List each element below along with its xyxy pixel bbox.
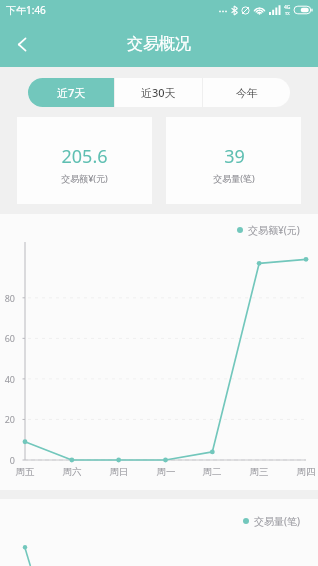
staticText: 交易额¥(元) (61, 172, 108, 184)
staticText: 近30天 (141, 85, 176, 100)
staticText: 交易量(笔) (213, 172, 255, 184)
staticText: 交易概况 (127, 34, 191, 54)
staticText: 交易额¥(元) (248, 223, 300, 237)
staticText: 60 (0, 332, 15, 344)
staticText: 20 (0, 413, 15, 425)
staticText: 40 (0, 373, 15, 385)
staticText: 4G (284, 4, 291, 11)
staticText: 周四 (289, 466, 318, 478)
staticText: 周二 (195, 466, 229, 478)
button[interactable]: 39 (166, 117, 301, 204)
staticText: 39 (224, 144, 245, 169)
staticText: 周三 (242, 466, 276, 478)
staticText: 周一 (149, 466, 183, 478)
staticText: 周日 (102, 466, 136, 478)
staticText: 周五 (8, 466, 42, 478)
staticText: 近7天 (57, 85, 86, 100)
staticText: 今年 (236, 86, 258, 100)
button[interactable]: 205.6 (17, 117, 152, 204)
staticText: 周六 (55, 466, 89, 478)
staticText: 下午1:46 (6, 3, 46, 17)
button[interactable]: Back (0, 22, 44, 66)
button[interactable]: 近7天 (28, 78, 114, 107)
staticText: 205.6 (61, 144, 108, 169)
staticText: TX (285, 11, 290, 16)
button[interactable]: 今年 (203, 78, 290, 107)
staticText: 80 (0, 292, 15, 304)
staticText: 交易量(笔) (254, 514, 300, 528)
staticText: 0 (0, 454, 15, 466)
button[interactable]: 近30天 (115, 78, 202, 107)
